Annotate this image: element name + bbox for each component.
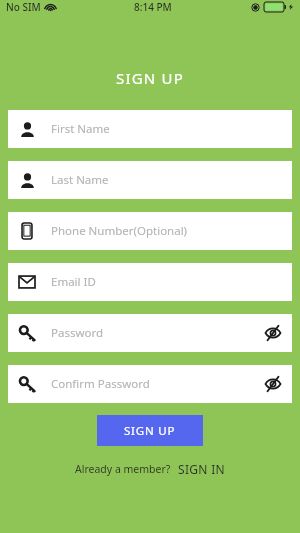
button[interactable]: Last Name: [8, 161, 292, 199]
staticText: Last Name: [51, 172, 109, 188]
button[interactable]: SIGN IN: [178, 461, 225, 477]
staticText: Phone Number(Optional): [51, 223, 188, 239]
button[interactable]: Email ID: [8, 263, 292, 301]
staticText: SIGN UP: [116, 68, 184, 88]
staticText: First Name: [51, 121, 110, 137]
button[interactable]: Toggle password visibility: [258, 369, 288, 399]
button[interactable]: SIGN UP: [97, 415, 203, 446]
staticText: Already a member?: [75, 462, 171, 476]
staticText: Password: [51, 325, 104, 341]
button[interactable]: Confirm Password: [8, 365, 292, 403]
staticText: No SIM: [6, 0, 41, 14]
staticText: SIGN UP: [124, 423, 176, 439]
staticText: SIGN IN: [178, 461, 225, 477]
button[interactable]: Toggle password visibility: [258, 318, 288, 348]
button[interactable]: First Name: [8, 110, 292, 148]
button[interactable]: Phone Number(Optional): [8, 212, 292, 250]
staticText: 8:14 PM: [134, 0, 172, 14]
staticText: Email ID: [51, 274, 96, 290]
button[interactable]: Password: [8, 314, 292, 352]
staticText: Confirm Password: [51, 376, 150, 392]
